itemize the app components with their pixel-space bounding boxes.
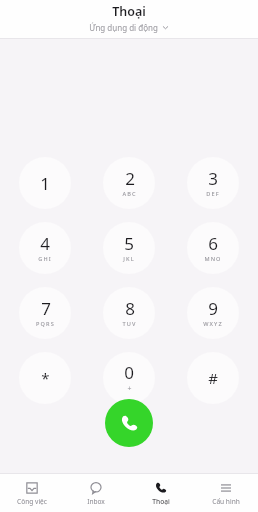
button[interactable]: Cấu hình	[193, 474, 258, 512]
button[interactable]: Call	[105, 399, 153, 447]
staticText: Inbox	[87, 497, 105, 506]
button[interactable]: Inbox	[64, 474, 128, 512]
button[interactable]: 9	[187, 287, 239, 339]
staticText: Thoại	[152, 497, 170, 506]
button[interactable]: 6	[187, 222, 239, 274]
staticText: DEF	[206, 190, 220, 198]
button[interactable]: 0	[103, 352, 155, 404]
button[interactable]: *	[19, 352, 71, 404]
button[interactable]: 5	[103, 222, 155, 274]
staticText: *	[41, 368, 50, 388]
staticText: TUV	[122, 320, 137, 328]
button[interactable]: 2	[103, 157, 155, 209]
staticText: 2	[125, 167, 135, 190]
staticText: +	[127, 384, 132, 394]
staticText: 1	[40, 172, 50, 195]
staticText: 6	[208, 232, 218, 255]
staticText: 9	[208, 297, 218, 320]
staticText: 3	[208, 167, 218, 190]
button[interactable]: Công việc	[0, 474, 64, 512]
staticText: Ứng dụng di động	[89, 22, 158, 33]
button[interactable]: Ứng dụng di động	[85, 21, 173, 34]
staticText: #	[208, 368, 218, 388]
staticText: MNO	[204, 255, 222, 263]
button[interactable]: 7	[19, 287, 71, 339]
staticText: JKL	[123, 255, 135, 263]
button[interactable]: 3	[187, 157, 239, 209]
staticText: Thoại	[112, 3, 146, 20]
staticText: Công việc	[17, 497, 47, 506]
staticText: 4	[40, 232, 50, 255]
staticText: 5	[124, 232, 134, 255]
staticText: GHI	[38, 255, 52, 263]
button[interactable]: 4	[19, 222, 71, 274]
button[interactable]: 8	[103, 287, 155, 339]
staticText: 0	[124, 361, 134, 384]
button[interactable]: #	[187, 352, 239, 404]
staticText: WXYZ	[203, 320, 223, 328]
staticText: 7	[41, 297, 51, 320]
staticText: PQRS	[36, 320, 55, 328]
staticText: 8	[125, 297, 135, 320]
staticText: ABC	[122, 190, 137, 198]
staticText: Cấu hình	[212, 497, 240, 506]
button[interactable]: 1	[19, 157, 71, 209]
button[interactable]: Thoại	[128, 474, 193, 512]
